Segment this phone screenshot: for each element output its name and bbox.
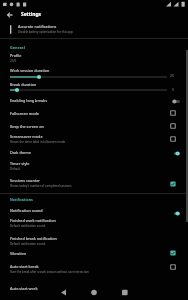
staticText: Settings — [21, 11, 42, 18]
button[interactable]: Timer style — [0, 160, 188, 174]
staticText: Start the break after a work session wit… — [10, 270, 89, 274]
staticText: Screensaver mode — [10, 134, 43, 139]
staticText: Vibration — [10, 251, 27, 256]
button[interactable]: Vibration — [0, 248, 188, 259]
button[interactable]: Keep the screen on — [0, 121, 188, 132]
staticText: Accurate notifications — [18, 24, 57, 29]
staticText: Notification sound — [10, 208, 43, 213]
staticText: General — [10, 45, 25, 50]
button[interactable]: Settings — [0, 8, 188, 21]
button[interactable] — [7, 12, 13, 18]
button[interactable]: Notification sound — [0, 205, 188, 217]
staticText: 25 — [170, 73, 175, 78]
staticText: Finished work notification — [10, 218, 56, 223]
staticText: Default — [10, 167, 21, 171]
staticText: Auto start work — [10, 286, 38, 291]
staticText: Sessions counter — [10, 178, 40, 183]
button[interactable]: Dark theme — [0, 147, 188, 158]
staticText: Default notification sound — [10, 242, 46, 246]
staticText: Profile — [10, 53, 22, 58]
staticText: Enabling long breaks — [10, 98, 47, 103]
staticText: Work session duration — [10, 68, 50, 73]
staticText: Fullscreen mode — [10, 111, 39, 116]
staticText: Keep the screen on — [10, 124, 44, 129]
staticText: Finished break notification — [10, 236, 57, 241]
button[interactable]: Auto start work — [0, 285, 188, 294]
button[interactable]: Sessions counter — [0, 177, 188, 191]
button[interactable]: Finished break notification — [0, 235, 188, 249]
staticText: Shows the timer label in fullscreen mode — [10, 140, 66, 144]
button[interactable]: Accurate notifications — [0, 22, 188, 38]
button[interactable]: Auto start break — [0, 262, 188, 277]
button[interactable]: Work session duration — [0, 68, 188, 82]
staticText: Dark theme — [10, 150, 31, 155]
button[interactable]: Enabling long breaks — [0, 95, 188, 106]
staticText: Timer style — [10, 161, 30, 166]
staticText: 25/5 — [10, 59, 17, 63]
staticText: Shows today's number of completed sessio… — [10, 184, 72, 188]
button[interactable]: Finished work notification — [0, 217, 188, 231]
staticText: Notifications — [10, 197, 33, 202]
button[interactable]: Screensaver mode — [0, 133, 188, 146]
staticText: Break duration — [10, 82, 37, 87]
button[interactable]: Profile — [0, 53, 188, 67]
staticText: 5 — [172, 87, 175, 92]
staticText: Default notification sound — [10, 224, 46, 228]
staticText: Disable battery optimization for this ap… — [18, 30, 73, 34]
button[interactable]: Fullscreen mode — [0, 108, 188, 119]
staticText: Auto start break — [10, 264, 39, 269]
button[interactable]: Break duration — [0, 82, 188, 94]
